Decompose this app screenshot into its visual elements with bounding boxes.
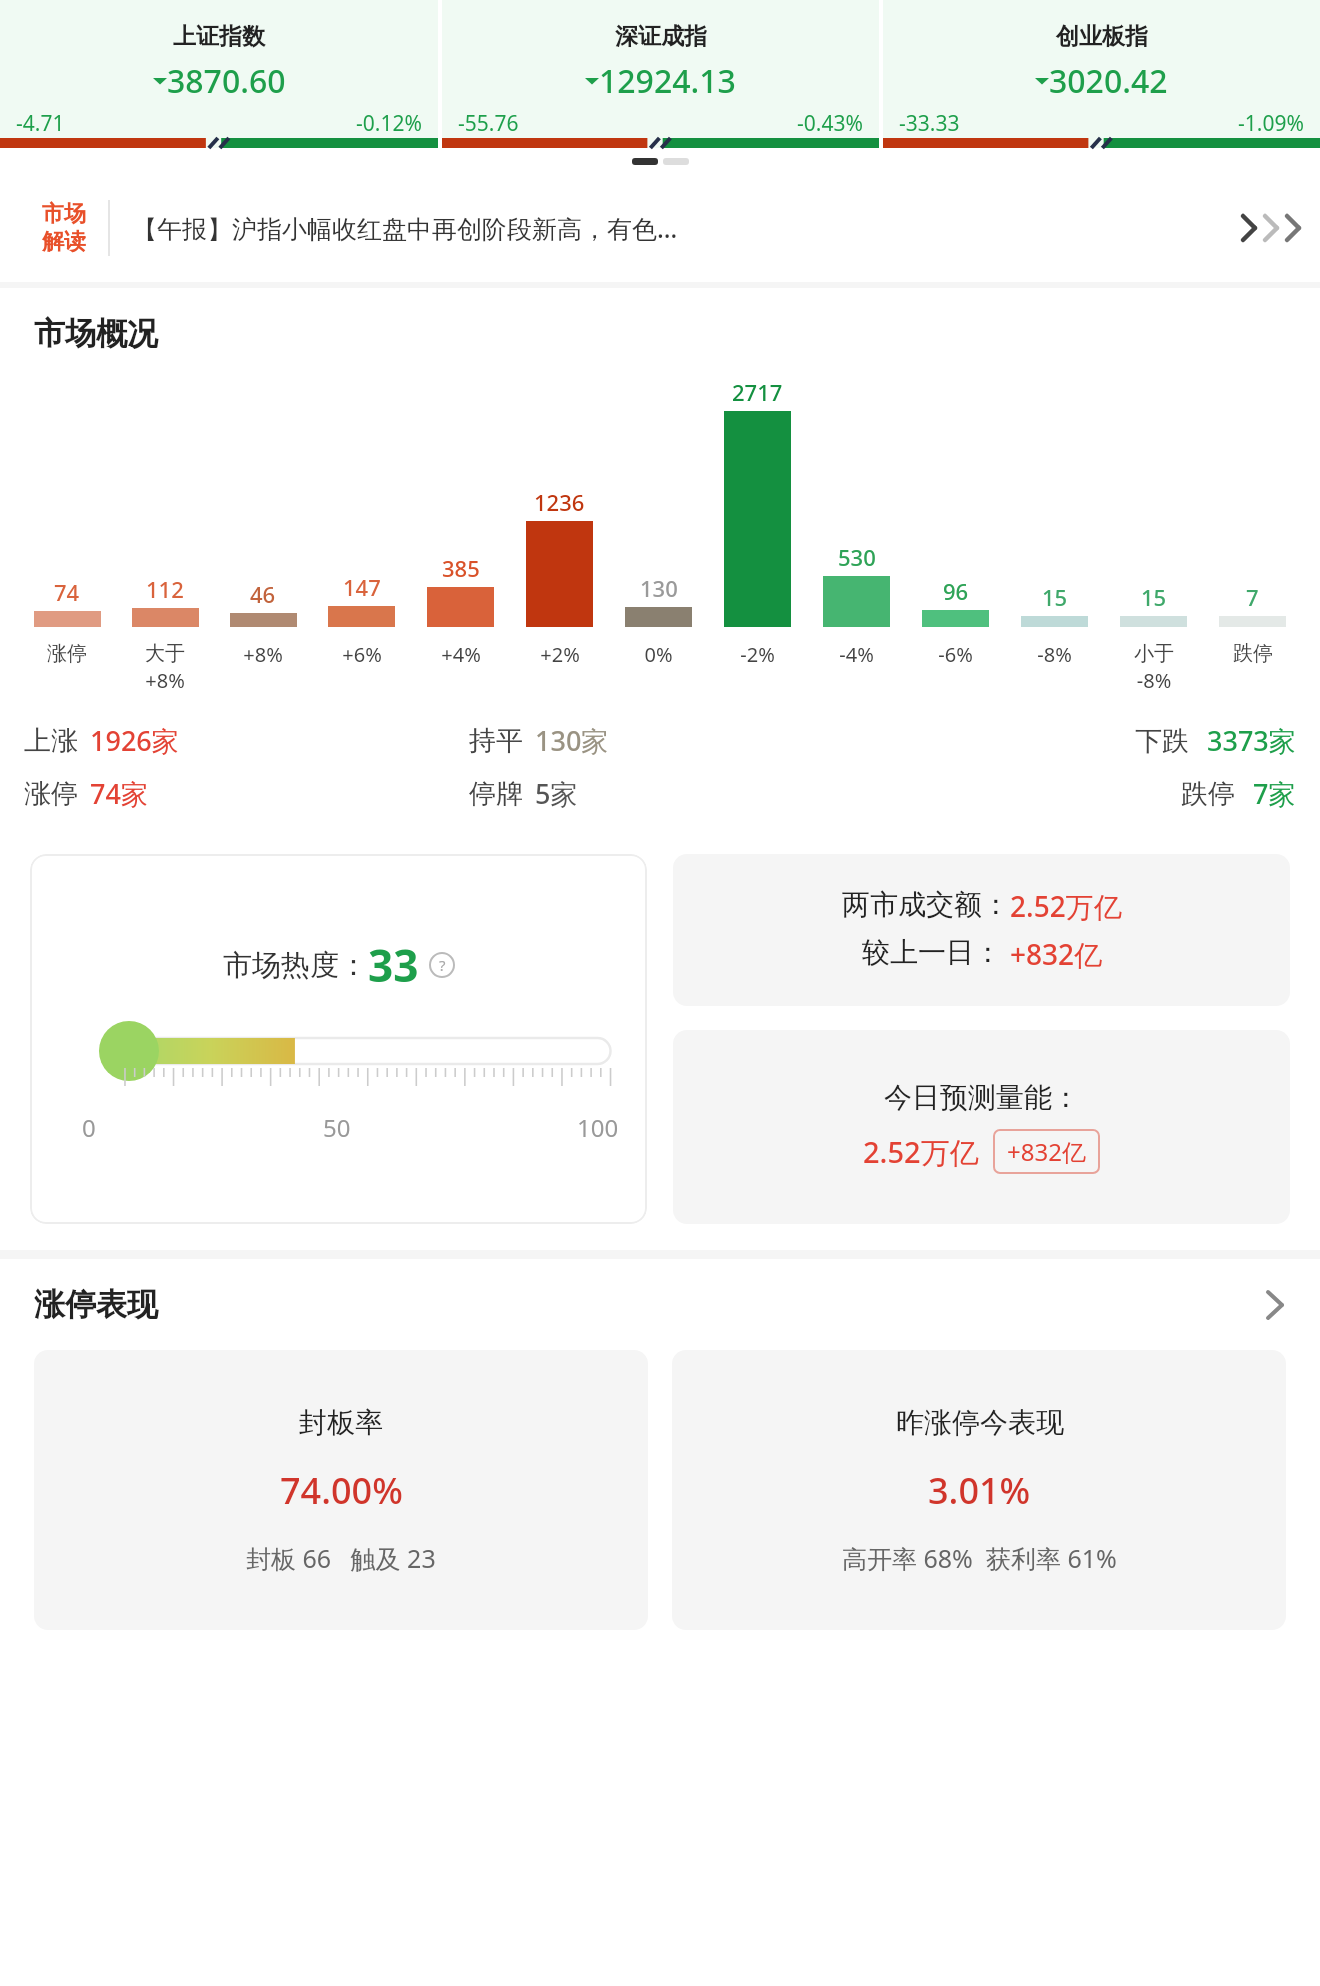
staticText: 涨停 bbox=[24, 777, 78, 811]
button[interactable]: Help bbox=[429, 952, 455, 978]
staticText: 下跌 bbox=[1135, 724, 1189, 758]
staticText: 3020.42 bbox=[1049, 59, 1168, 103]
staticText: 昨涨停今表现 bbox=[896, 1405, 1064, 1440]
staticText: 74.00% bbox=[280, 1466, 403, 1515]
staticText: 1926家 bbox=[90, 722, 179, 759]
staticText: +4% bbox=[441, 641, 481, 668]
staticText: +832亿 bbox=[1010, 935, 1103, 973]
staticText: -0.43% bbox=[797, 109, 863, 138]
staticText: 12924.13 bbox=[599, 59, 736, 103]
staticText: 上证指数 bbox=[173, 22, 265, 51]
staticText: 3373家 bbox=[1207, 722, 1296, 759]
staticText: 涨停 bbox=[47, 641, 87, 666]
staticText: 74家 bbox=[90, 775, 148, 812]
staticText: +8% bbox=[243, 641, 283, 668]
staticText: 较上一日： bbox=[862, 935, 1002, 970]
button[interactable]: 涨停表现 bbox=[34, 1285, 1286, 1324]
staticText: 33 bbox=[368, 935, 419, 995]
staticText: 大于 +8% bbox=[145, 641, 185, 694]
staticText: 15 bbox=[1042, 582, 1068, 612]
staticText: 7家 bbox=[1253, 775, 1296, 812]
staticText: -2% bbox=[740, 641, 775, 668]
staticText: -1.09% bbox=[1238, 109, 1304, 138]
other: Open 涨停表现 bbox=[1266, 1288, 1286, 1322]
staticText: 3.01% bbox=[928, 1466, 1031, 1515]
staticText: 130 bbox=[640, 573, 678, 603]
button[interactable]: 今日预测量能： bbox=[673, 1030, 1290, 1224]
staticText: 市场 bbox=[42, 200, 86, 228]
staticText: 2.52万亿 bbox=[1010, 887, 1122, 925]
staticText: -6% bbox=[938, 641, 973, 668]
button[interactable]: 市场热度： bbox=[30, 854, 647, 1224]
staticText: 今日预测量能： bbox=[884, 1080, 1080, 1115]
staticText: -33.33 bbox=[899, 109, 960, 138]
other: More news bbox=[1228, 214, 1320, 242]
staticText: 147 bbox=[343, 572, 381, 602]
staticText: 跌停 bbox=[1233, 641, 1273, 666]
button[interactable]: 昨涨停今表现 bbox=[672, 1350, 1286, 1630]
button[interactable]: 创业板指 bbox=[883, 0, 1320, 148]
staticText: 市场热度： bbox=[223, 947, 368, 984]
staticText: 持平 bbox=[469, 724, 523, 758]
staticText: 3870.60 bbox=[167, 59, 286, 103]
staticText: 【午报】沪指小幅收红盘中再创阶段新高，有色… bbox=[132, 211, 1228, 245]
staticText: 50 bbox=[323, 1111, 351, 1144]
staticText: 解读 bbox=[42, 228, 86, 256]
staticText: 停牌 bbox=[469, 777, 523, 811]
staticText: 创业板指 bbox=[1056, 22, 1148, 51]
staticText: 两市成交额： bbox=[842, 887, 1010, 922]
staticText: 0 bbox=[82, 1111, 96, 1144]
staticText: 市场概况 bbox=[34, 314, 158, 353]
staticText: +2% bbox=[540, 641, 580, 668]
staticText: 上涨 bbox=[24, 724, 78, 758]
staticText: 7 bbox=[1246, 582, 1259, 612]
staticText: -4.71 bbox=[16, 109, 65, 138]
staticText: +832亿 bbox=[1007, 1135, 1086, 1168]
staticText: 112 bbox=[146, 574, 184, 604]
staticText: -8% bbox=[1037, 641, 1072, 668]
staticText: 2717 bbox=[732, 377, 783, 407]
staticText: 530 bbox=[838, 542, 876, 572]
button[interactable]: 封板率 bbox=[34, 1350, 648, 1630]
staticText: ? bbox=[439, 955, 446, 975]
staticText: -4% bbox=[839, 641, 874, 668]
staticText: 封板 66 触及 23 bbox=[246, 1541, 436, 1575]
staticText: 385 bbox=[442, 553, 480, 583]
staticText: 130家 bbox=[535, 722, 609, 759]
staticText: -0.12% bbox=[356, 109, 422, 138]
staticText: 100 bbox=[577, 1111, 619, 1144]
staticText: 1236 bbox=[534, 487, 585, 517]
staticText: 46 bbox=[250, 579, 276, 609]
staticText: 跌停 bbox=[1181, 777, 1235, 811]
staticText: 深证成指 bbox=[615, 22, 707, 51]
staticText: 涨停表现 bbox=[34, 1285, 158, 1324]
staticText: 96 bbox=[943, 576, 969, 606]
staticText: -55.76 bbox=[458, 109, 519, 138]
button[interactable]: 深证成指 bbox=[442, 0, 879, 148]
staticText: +6% bbox=[342, 641, 382, 668]
button[interactable]: 两市成交额： bbox=[673, 854, 1290, 1006]
button[interactable]: 市场 bbox=[0, 174, 1320, 282]
staticText: 高开率 68% 获利率 61% bbox=[842, 1541, 1117, 1575]
staticText: 5家 bbox=[535, 775, 578, 812]
staticText: 2.52万亿 bbox=[863, 1132, 979, 1172]
staticText: 74 bbox=[54, 577, 80, 607]
staticText: 0% bbox=[644, 641, 673, 668]
staticText: 15 bbox=[1141, 582, 1167, 612]
staticText: 封板率 bbox=[299, 1405, 383, 1440]
staticText: 小于 -8% bbox=[1134, 641, 1174, 694]
button[interactable]: 上证指数 bbox=[0, 0, 438, 148]
